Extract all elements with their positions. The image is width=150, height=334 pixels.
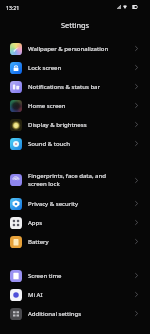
other: Mi AI: [10, 289, 22, 301]
other: Screen time: [10, 270, 22, 282]
button[interactable]: Display and brightness: [0, 115, 150, 134]
staticText: Display & brightness: [28, 121, 121, 129]
other: Wallpaper and personalization: [10, 43, 22, 55]
other: Lock screen: [10, 62, 22, 74]
staticText: Settings: [61, 20, 90, 30]
button[interactable]: Notifications and status bar: [0, 77, 150, 96]
button[interactable]: Wallpaper and personalization: [0, 39, 150, 58]
staticText: Battery: [28, 238, 121, 246]
button[interactable]: Home screen: [0, 96, 150, 115]
button[interactable]: Mi AI: [0, 285, 150, 304]
staticText: Home screen: [28, 102, 121, 110]
other: Additional settings: [10, 308, 22, 320]
other: Sound and touch: [10, 138, 22, 150]
staticText: Apps: [28, 219, 121, 227]
staticText: Privacy & security: [28, 200, 121, 208]
staticText: Notifications & status bar: [28, 83, 121, 91]
button[interactable]: Apps: [0, 213, 150, 232]
other: Home screen: [10, 100, 22, 112]
other: Display and brightness: [10, 119, 22, 131]
other: Battery: [10, 236, 22, 248]
staticText: 13:21: [6, 4, 20, 11]
button[interactable]: Additional settings: [0, 304, 150, 323]
staticText: Screen time: [28, 272, 121, 280]
other: Apps: [10, 217, 22, 229]
button[interactable]: Lock screen: [0, 58, 150, 77]
other: Fingerprints, face data and screen lock: [10, 174, 22, 186]
button[interactable]: Screen time: [0, 266, 150, 285]
staticText: Mi AI: [28, 291, 121, 299]
staticText: Fingerprints, face data, and screen lock: [28, 172, 121, 188]
staticText: Additional settings: [28, 310, 121, 318]
staticText: Lock screen: [28, 64, 121, 72]
other: Privacy and security: [10, 198, 22, 210]
button[interactable]: Fingerprints, face data and screen lock: [0, 166, 150, 194]
button[interactable]: Sound and touch: [0, 134, 150, 153]
button[interactable]: Privacy and security: [0, 194, 150, 213]
staticText: Sound & touch: [28, 140, 121, 148]
other: Notifications and status bar: [10, 81, 22, 93]
button[interactable]: Battery: [0, 232, 150, 251]
staticText: Wallpaper & personalization: [28, 45, 121, 53]
